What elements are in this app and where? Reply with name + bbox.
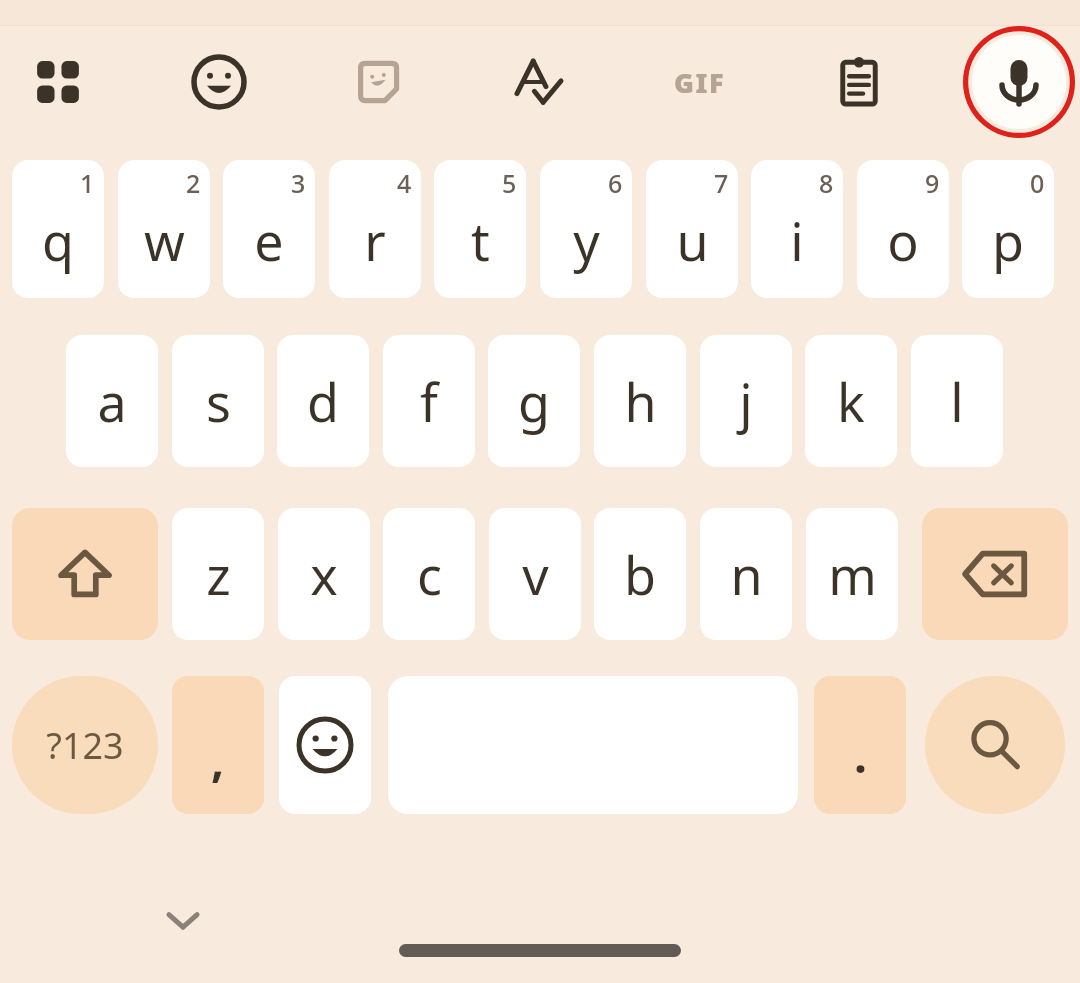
button[interactable]: j xyxy=(700,335,792,467)
button[interactable]: v xyxy=(489,508,581,640)
button[interactable]: 3 xyxy=(223,160,315,298)
button[interactable]: 5 xyxy=(434,160,526,298)
staticText: 0 xyxy=(1030,166,1045,200)
staticText: s xyxy=(206,366,231,437)
staticText: . xyxy=(854,724,867,787)
staticText: u xyxy=(676,205,709,276)
staticText: p xyxy=(992,205,1024,276)
staticText: i xyxy=(790,205,804,276)
button[interactable]: h xyxy=(594,335,686,467)
staticText: r xyxy=(364,205,386,276)
button[interactable]: l xyxy=(911,335,1003,467)
staticText: 3 xyxy=(291,166,306,200)
button[interactable]: Backspace xyxy=(922,508,1068,640)
button[interactable]: Switch keyboard xyxy=(14,38,102,126)
staticText: 6 xyxy=(608,166,623,200)
button[interactable]: Shift xyxy=(12,508,158,640)
staticText: ?123 xyxy=(46,721,124,770)
staticText: 9 xyxy=(925,166,940,200)
button[interactable]: 8 xyxy=(751,160,843,298)
button[interactable]: 2 xyxy=(118,160,210,298)
button[interactable]: s xyxy=(172,335,264,467)
staticText: c xyxy=(417,539,442,610)
staticText: a xyxy=(97,366,127,437)
staticText: 8 xyxy=(819,166,834,200)
button[interactable]: n xyxy=(700,508,792,640)
staticText: g xyxy=(518,366,550,437)
button[interactable]: ?123 xyxy=(12,676,158,814)
button[interactable]: , xyxy=(172,676,264,814)
button[interactable]: d xyxy=(277,335,369,467)
button[interactable]: Search xyxy=(925,676,1065,814)
staticText: o xyxy=(887,205,919,276)
button[interactable]: 9 xyxy=(857,160,949,298)
staticText: v xyxy=(522,539,549,610)
button[interactable]: GIF xyxy=(655,38,743,126)
button[interactable]: Clipboard xyxy=(815,38,903,126)
button[interactable]: m xyxy=(806,508,898,640)
staticText: h xyxy=(624,366,657,437)
button[interactable]: 1 xyxy=(12,160,104,298)
staticText: k xyxy=(837,366,865,437)
staticText: GIF xyxy=(674,64,725,101)
staticText: , xyxy=(211,728,225,791)
staticText: x xyxy=(310,539,338,610)
staticText: n xyxy=(730,539,763,610)
button[interactable]: Emoji xyxy=(279,676,371,814)
button[interactable]: b xyxy=(594,508,686,640)
button[interactable]: Grammar check xyxy=(495,38,583,126)
staticText: f xyxy=(420,366,438,437)
button[interactable]: . xyxy=(814,676,906,814)
staticText: 7 xyxy=(714,166,729,200)
button[interactable]: 0 xyxy=(962,160,1054,298)
button[interactable]: Emoji xyxy=(175,38,263,126)
staticText: y xyxy=(573,205,600,276)
button[interactable]: 4 xyxy=(329,160,421,298)
staticText: z xyxy=(206,539,231,610)
button[interactable]: Voice input xyxy=(963,26,1075,138)
staticText: j xyxy=(739,366,753,437)
button[interactable]: z xyxy=(172,508,264,640)
staticText: l xyxy=(950,366,964,437)
staticText: w xyxy=(144,205,185,276)
staticText: 2 xyxy=(186,166,201,200)
button[interactable]: 7 xyxy=(646,160,738,298)
button[interactable]: c xyxy=(383,508,475,640)
button[interactable]: x xyxy=(278,508,370,640)
button[interactable]: 6 xyxy=(540,160,632,298)
staticText: q xyxy=(42,205,74,276)
button[interactable]: g xyxy=(488,335,580,467)
staticText: e xyxy=(254,205,284,276)
button[interactable]: Stickers xyxy=(334,38,422,126)
button[interactable]: k xyxy=(805,335,897,467)
button[interactable]: a xyxy=(66,335,158,467)
button[interactable]: f xyxy=(383,335,475,467)
staticText: b xyxy=(624,539,656,610)
staticText: 5 xyxy=(502,166,517,200)
staticText: 4 xyxy=(397,166,412,200)
button[interactable]: Hide keyboard xyxy=(142,880,224,960)
staticText: 1 xyxy=(80,166,95,200)
staticText: t xyxy=(471,205,490,276)
staticText: m xyxy=(828,539,877,610)
staticText: d xyxy=(307,366,339,437)
